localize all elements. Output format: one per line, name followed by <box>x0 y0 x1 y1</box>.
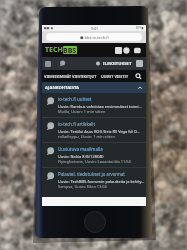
staticText: Palautel, tiedotukset ja arvonnat <box>58 171 125 177</box>
staticText: ■■ ● <box>44 26 54 30</box>
staticText: TECH <box>45 45 63 55</box>
button[interactable]: Social media links <box>115 47 141 54</box>
staticText: Uusin: TechBBS-foorumin palautteita ja k… <box>58 179 145 184</box>
button[interactable]: AJANKOHTAISTA <box>42 82 146 93</box>
staticText: 87%▮ <box>136 26 144 30</box>
button[interactable]: Uusiutuva maailmalla <box>42 143 146 167</box>
staticText: BBS <box>63 46 77 54</box>
staticText: Sempsa, Uusin: Eilen 13:04 <box>58 184 107 189</box>
staticText: Uusin: Nokia 8 (6/128GB) <box>58 154 104 159</box>
staticText: rollaéleppu, Uusin: 1 min sitten <box>58 134 115 139</box>
button[interactable]: Menu <box>45 61 51 67</box>
button[interactable]: Search <box>135 73 142 80</box>
staticText: AJANKOHTAISTA <box>45 85 79 91</box>
button[interactable]: ● bbs.io-tech.fi <box>46 33 142 41</box>
button[interactable]: Conversations <box>59 60 66 67</box>
button[interactable]: UUDET VIESTIT <box>101 74 129 79</box>
button[interactable]: Palautel, tiedotukset ja arvonnat <box>42 168 146 192</box>
staticText: 9:41 <box>91 26 98 31</box>
button[interactable]: VIIMEISIMMÄT VIESTIKETJUT <box>44 74 97 79</box>
staticText: io-tech.fi uutiset <box>58 96 92 102</box>
button[interactable]: Account <box>136 60 143 67</box>
staticText: ● bbs.io-tech.fi <box>80 35 109 40</box>
staticText: Uusiutuva maailmalla <box>58 146 103 152</box>
staticText: Flyingfortress, Uusin: Lauantai klo 11:5… <box>58 159 131 164</box>
button[interactable]: io-tech.fi artikkelit <box>42 118 146 142</box>
staticText: Uusin: Testiloi Asus ROG Strix RX Vega 6… <box>58 129 140 134</box>
button[interactable]: Alerts <box>95 61 101 67</box>
staticText: io-tech.fi artikkelit <box>58 121 96 127</box>
staticText: Muilla, Uusin: 1 min sitten <box>58 109 106 114</box>
button[interactable]: ILMOITUKSET <box>103 61 132 67</box>
staticText: Uusin: Rambus vahvistaa ensimmäiset toim… <box>58 104 142 109</box>
button[interactable]: io-tech.fi uutiset <box>42 93 146 117</box>
